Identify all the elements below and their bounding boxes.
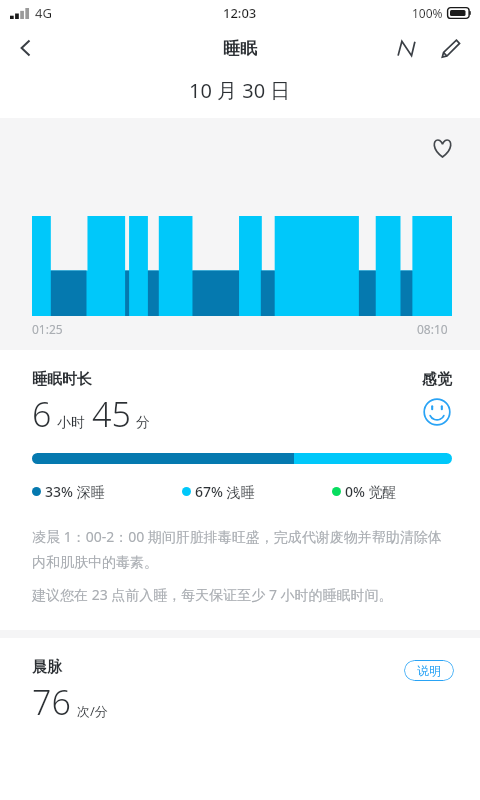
staticText: 01:25 [32, 321, 63, 337]
staticText: 6 [32, 391, 52, 437]
staticText: 100% [412, 5, 443, 21]
staticText: 12:03 [223, 4, 257, 22]
button[interactable]: Favorite [426, 132, 458, 164]
button[interactable]: Edit [428, 26, 472, 70]
button[interactable]: Trends [384, 26, 428, 70]
staticText: 睡眠时长 [32, 370, 92, 389]
staticText: 分 [136, 414, 150, 432]
staticText: 10 月 30 日 [189, 77, 291, 104]
staticText: 33% 深睡 [45, 482, 105, 501]
staticText: 小时 [57, 414, 85, 432]
button[interactable]: Feeling [422, 397, 452, 427]
button[interactable]: Back [0, 26, 52, 70]
staticText: 感觉 [422, 370, 452, 389]
staticText: 次/分 [77, 702, 108, 720]
staticText: 67% 浅睡 [195, 482, 255, 501]
staticText: 0% 觉醒 [345, 482, 397, 501]
staticText: 建议您在 23 点前入睡，每天保证至少 7 小时的睡眠时间。 [32, 585, 393, 604]
staticText: 08:10 [417, 321, 448, 337]
staticText: 凌晨 1：00-2：00 期间肝脏排毒旺盛，完成代谢废物并帮助清除体内和肌肤中的… [32, 527, 452, 571]
staticText: 晨脉 [32, 658, 62, 677]
staticText: 说明 [417, 663, 441, 678]
staticText: 4G [35, 4, 52, 22]
staticText: 76 [32, 679, 71, 725]
staticText: 45 [92, 391, 131, 437]
button[interactable]: 说明 [404, 660, 454, 681]
staticText: 睡眠 [223, 38, 257, 59]
